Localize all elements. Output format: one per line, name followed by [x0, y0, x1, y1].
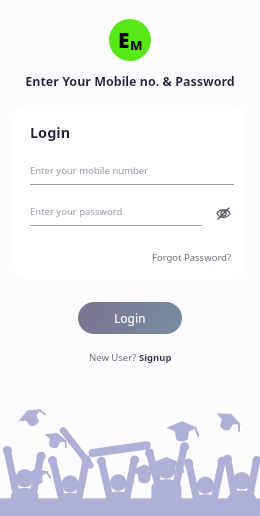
staticText: Enter your password — [30, 205, 123, 218]
staticText: Login — [30, 122, 71, 142]
button[interactable]: New User? — [85, 347, 176, 368]
button[interactable]: Enter your mobile number — [30, 164, 234, 185]
staticText: New User? — [89, 351, 139, 364]
staticText: Enter Your Mobile no. & Password — [25, 73, 235, 90]
button[interactable]: Login — [78, 302, 182, 334]
staticText: E — [118, 26, 130, 55]
button[interactable]: Enter your password — [30, 205, 202, 226]
button[interactable]: Forgot Password? — [150, 249, 234, 266]
button[interactable]: Show password — [212, 202, 234, 224]
staticText: Login — [114, 310, 146, 326]
staticText: Forgot Password? — [152, 251, 232, 264]
staticText: Enter your mobile number — [30, 164, 149, 177]
staticText: M — [130, 36, 143, 54]
staticText: Signup — [139, 351, 172, 364]
